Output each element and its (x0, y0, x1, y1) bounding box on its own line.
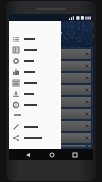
button[interactable] (11, 97, 91, 107)
button[interactable]: Recent apps (69, 149, 80, 160)
button[interactable] (9, 55, 61, 66)
button[interactable] (11, 49, 91, 59)
button[interactable] (9, 66, 61, 77)
button[interactable]: Back (22, 149, 33, 160)
button[interactable] (9, 121, 61, 132)
button[interactable] (9, 33, 61, 44)
button[interactable] (11, 133, 91, 143)
button[interactable] (9, 44, 61, 55)
button[interactable]: Home (46, 149, 57, 160)
button[interactable] (11, 121, 91, 131)
button[interactable] (11, 61, 91, 71)
button[interactable] (11, 109, 91, 119)
button[interactable] (11, 85, 91, 95)
button[interactable] (9, 132, 61, 143)
button[interactable] (11, 73, 91, 83)
button[interactable] (9, 77, 61, 88)
button[interactable] (9, 88, 61, 99)
button[interactable] (11, 145, 91, 147)
button[interactable] (9, 99, 61, 110)
